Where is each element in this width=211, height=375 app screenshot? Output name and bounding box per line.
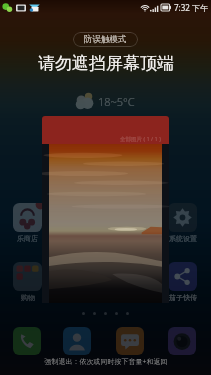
staticText: 全部图片 ( 1 / 1 ) xyxy=(120,135,161,143)
staticText: 乐商店 xyxy=(17,234,38,243)
staticText: 请勿遮挡屏幕顶端 xyxy=(38,53,174,74)
staticText: 茄子快传 xyxy=(169,293,197,302)
button[interactable]: App xyxy=(168,327,196,355)
staticText: 系统设置 xyxy=(169,234,197,243)
button[interactable]: 全部图片 ( 1 / 1 ) xyxy=(42,116,169,303)
button[interactable]: 乐商店 xyxy=(13,203,42,243)
button[interactable]: 防误触模式 xyxy=(73,32,138,47)
staticText: 防误触模式 xyxy=(84,34,127,45)
button[interactable]: 茄子快传 xyxy=(168,262,197,302)
button[interactable]: 购物 xyxy=(13,262,42,302)
button[interactable]: App xyxy=(63,327,91,355)
button[interactable]: App xyxy=(13,327,41,355)
staticText: 18~5°C xyxy=(98,94,135,109)
button[interactable]: App xyxy=(116,327,144,355)
staticText: 强制退出：依次或同时按下音量+和返回 xyxy=(44,357,168,367)
staticText: 7:32 下午 xyxy=(174,2,208,13)
button[interactable]: 系统设置 xyxy=(168,203,197,243)
staticText: 购物 xyxy=(21,293,35,302)
